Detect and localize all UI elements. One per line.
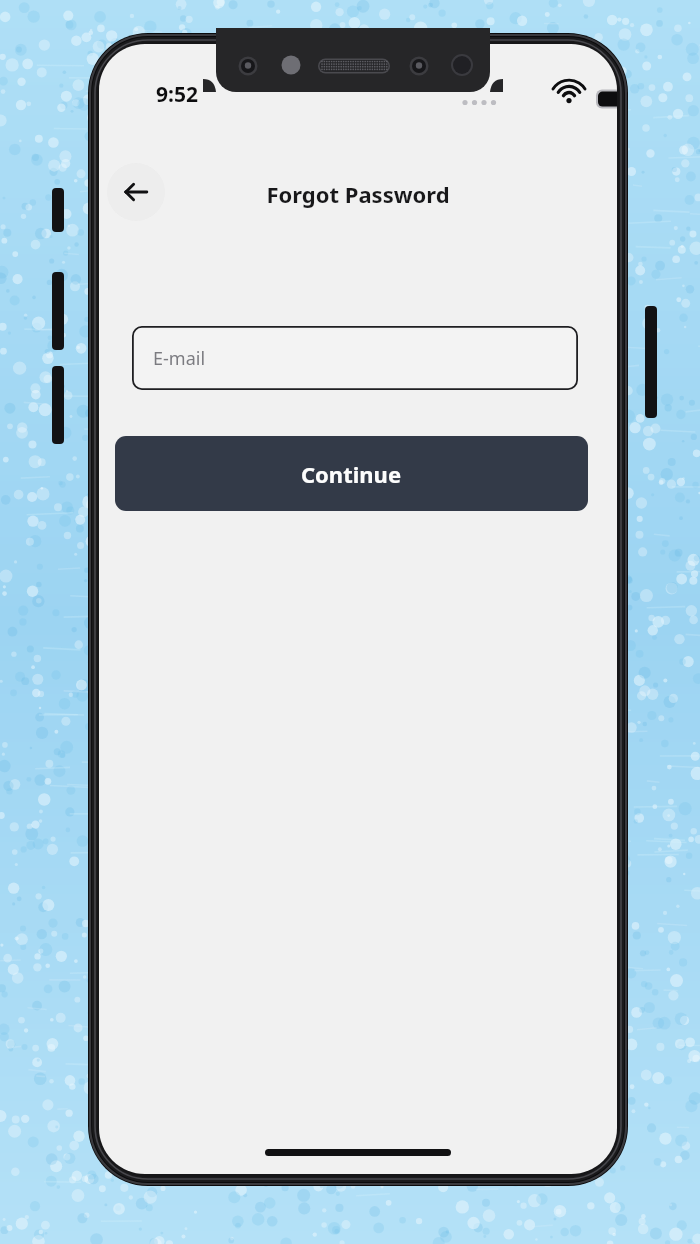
button[interactable]: Continue	[115, 436, 588, 511]
button[interactable]: E-mail	[132, 326, 578, 390]
staticText: Continue	[301, 459, 402, 489]
staticText: Forgot Password	[266, 179, 450, 209]
button[interactable]: Back	[107, 163, 165, 221]
staticText: E-mail	[153, 346, 206, 371]
staticText: 9:52	[156, 80, 198, 109]
